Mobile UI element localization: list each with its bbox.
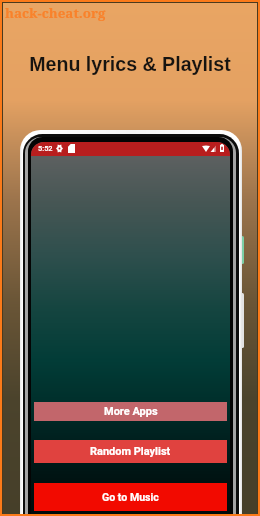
button[interactable]: Random Playlist	[34, 440, 227, 463]
staticText: Go to Music	[102, 491, 159, 503]
other: SIM card	[68, 144, 75, 153]
button[interactable]: Go to Music	[34, 483, 227, 511]
other: Settings	[56, 144, 63, 153]
staticText: Random Playlist	[90, 445, 171, 458]
staticText: More Apps	[104, 405, 158, 418]
staticText: hack-cheat.org	[5, 4, 106, 22]
staticText: Menu lyrics & Playlist	[3, 53, 257, 75]
staticText: 5:52	[38, 144, 53, 153]
button[interactable]: More Apps	[34, 402, 227, 421]
